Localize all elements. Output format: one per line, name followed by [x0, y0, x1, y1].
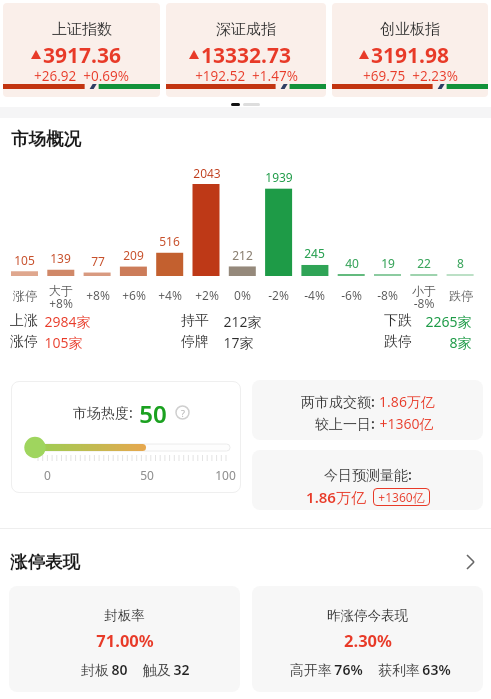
staticText: -6% [341, 287, 362, 303]
staticText: +26.92 +0.69% [34, 67, 129, 85]
staticText: +6% [122, 287, 146, 303]
staticText: 涨停 [13, 288, 37, 303]
staticText: 下跌 [384, 312, 412, 330]
staticText: 212 [232, 247, 253, 263]
staticText: +69.75 +2.23% [363, 67, 458, 85]
button[interactable]: 两市成交额: [252, 380, 483, 440]
staticText: 获利率 [376, 660, 422, 679]
staticText: 持平 [181, 312, 209, 330]
staticText: -4% [304, 287, 325, 303]
button[interactable]: 市场热度: [11, 381, 241, 493]
staticText: 32 [173, 660, 190, 679]
staticText: 40 [345, 255, 359, 271]
staticText: 50 [140, 467, 154, 483]
staticText: 1.86万亿 [379, 392, 435, 411]
staticText: 2043 [193, 165, 221, 181]
button[interactable]: 创业板指 [332, 3, 488, 97]
staticText: 1.86万亿 [306, 487, 366, 507]
staticText: 1939 [265, 169, 293, 185]
staticText: 71.00% [96, 629, 154, 651]
staticText: +192.52 +1.47% [195, 67, 298, 85]
staticText: 3917.36 [43, 41, 121, 67]
staticText: 100 [215, 467, 236, 483]
staticText: 小于 -8% [412, 283, 436, 309]
staticText: 105 [14, 252, 35, 268]
staticText: 80 [111, 660, 128, 679]
staticText: 17家 [223, 333, 254, 352]
staticText: 创业板指 [380, 20, 440, 39]
staticText: 高开率 [288, 660, 334, 679]
staticText: 触及 [141, 660, 173, 679]
staticText: 2984家 [44, 312, 91, 331]
staticText: +1360亿 [379, 414, 434, 433]
staticText: 市场热度: [73, 403, 133, 422]
staticText: 50 [139, 397, 167, 427]
staticText: 封板 [79, 660, 111, 679]
button[interactable]: 今日预测量能: [252, 450, 483, 510]
staticText: 63% [422, 660, 451, 679]
button[interactable]: 深证成指 [166, 3, 326, 97]
staticText: 212家 [223, 312, 262, 331]
staticText: 209 [123, 247, 144, 263]
staticText: 22 [417, 255, 431, 271]
staticText: +2% [195, 287, 219, 303]
staticText: +1360亿 [378, 489, 425, 505]
staticText: 大于 +8% [49, 283, 73, 309]
staticText: -8% [377, 287, 398, 303]
button[interactable]: 涨停表现 [0, 545, 491, 579]
staticText: +4% [158, 287, 182, 303]
staticText: 2265家 [425, 312, 472, 331]
staticText: 3191.98 [371, 41, 449, 67]
staticText: 上证指数 [52, 20, 112, 39]
staticText: -2% [268, 287, 289, 303]
staticText: 较上一日: [315, 414, 375, 433]
staticText: 139 [50, 250, 71, 266]
staticText: 13332.73 [201, 41, 291, 67]
staticText: 8家 [449, 333, 472, 352]
staticText: 停牌 [181, 333, 209, 351]
staticText: 8 [457, 255, 464, 271]
staticText: 涨停表现 [10, 551, 80, 573]
button[interactable]: 昨涨停今表现 [252, 586, 483, 692]
staticText: ? [181, 407, 185, 419]
staticText: 105家 [44, 333, 83, 352]
staticText: 跌停 [449, 288, 473, 303]
staticText: 2.30% [344, 629, 392, 651]
staticText: 245 [304, 245, 325, 261]
button[interactable]: 封板率 [9, 586, 240, 692]
staticText: 深证成指 [216, 20, 276, 39]
staticText: 516 [159, 233, 180, 249]
staticText: 两市成交额: [301, 392, 375, 411]
staticText: 0 [44, 467, 51, 483]
staticText: +8% [86, 287, 110, 303]
staticText: 19 [381, 255, 395, 271]
staticText: 上涨 [10, 312, 38, 330]
staticText: 昨涨停今表现 [327, 607, 408, 624]
staticText: 77 [91, 253, 105, 269]
staticText: 76% [334, 660, 363, 679]
staticText: 封板率 [104, 607, 145, 624]
staticText: 0% [234, 287, 251, 303]
staticText: 跌停 [384, 333, 412, 351]
staticText: 市场概况 [11, 128, 81, 150]
staticText: 涨停 [10, 333, 38, 351]
button[interactable]: 上证指数 [3, 3, 160, 97]
staticText: 今日预测量能: [324, 465, 412, 484]
